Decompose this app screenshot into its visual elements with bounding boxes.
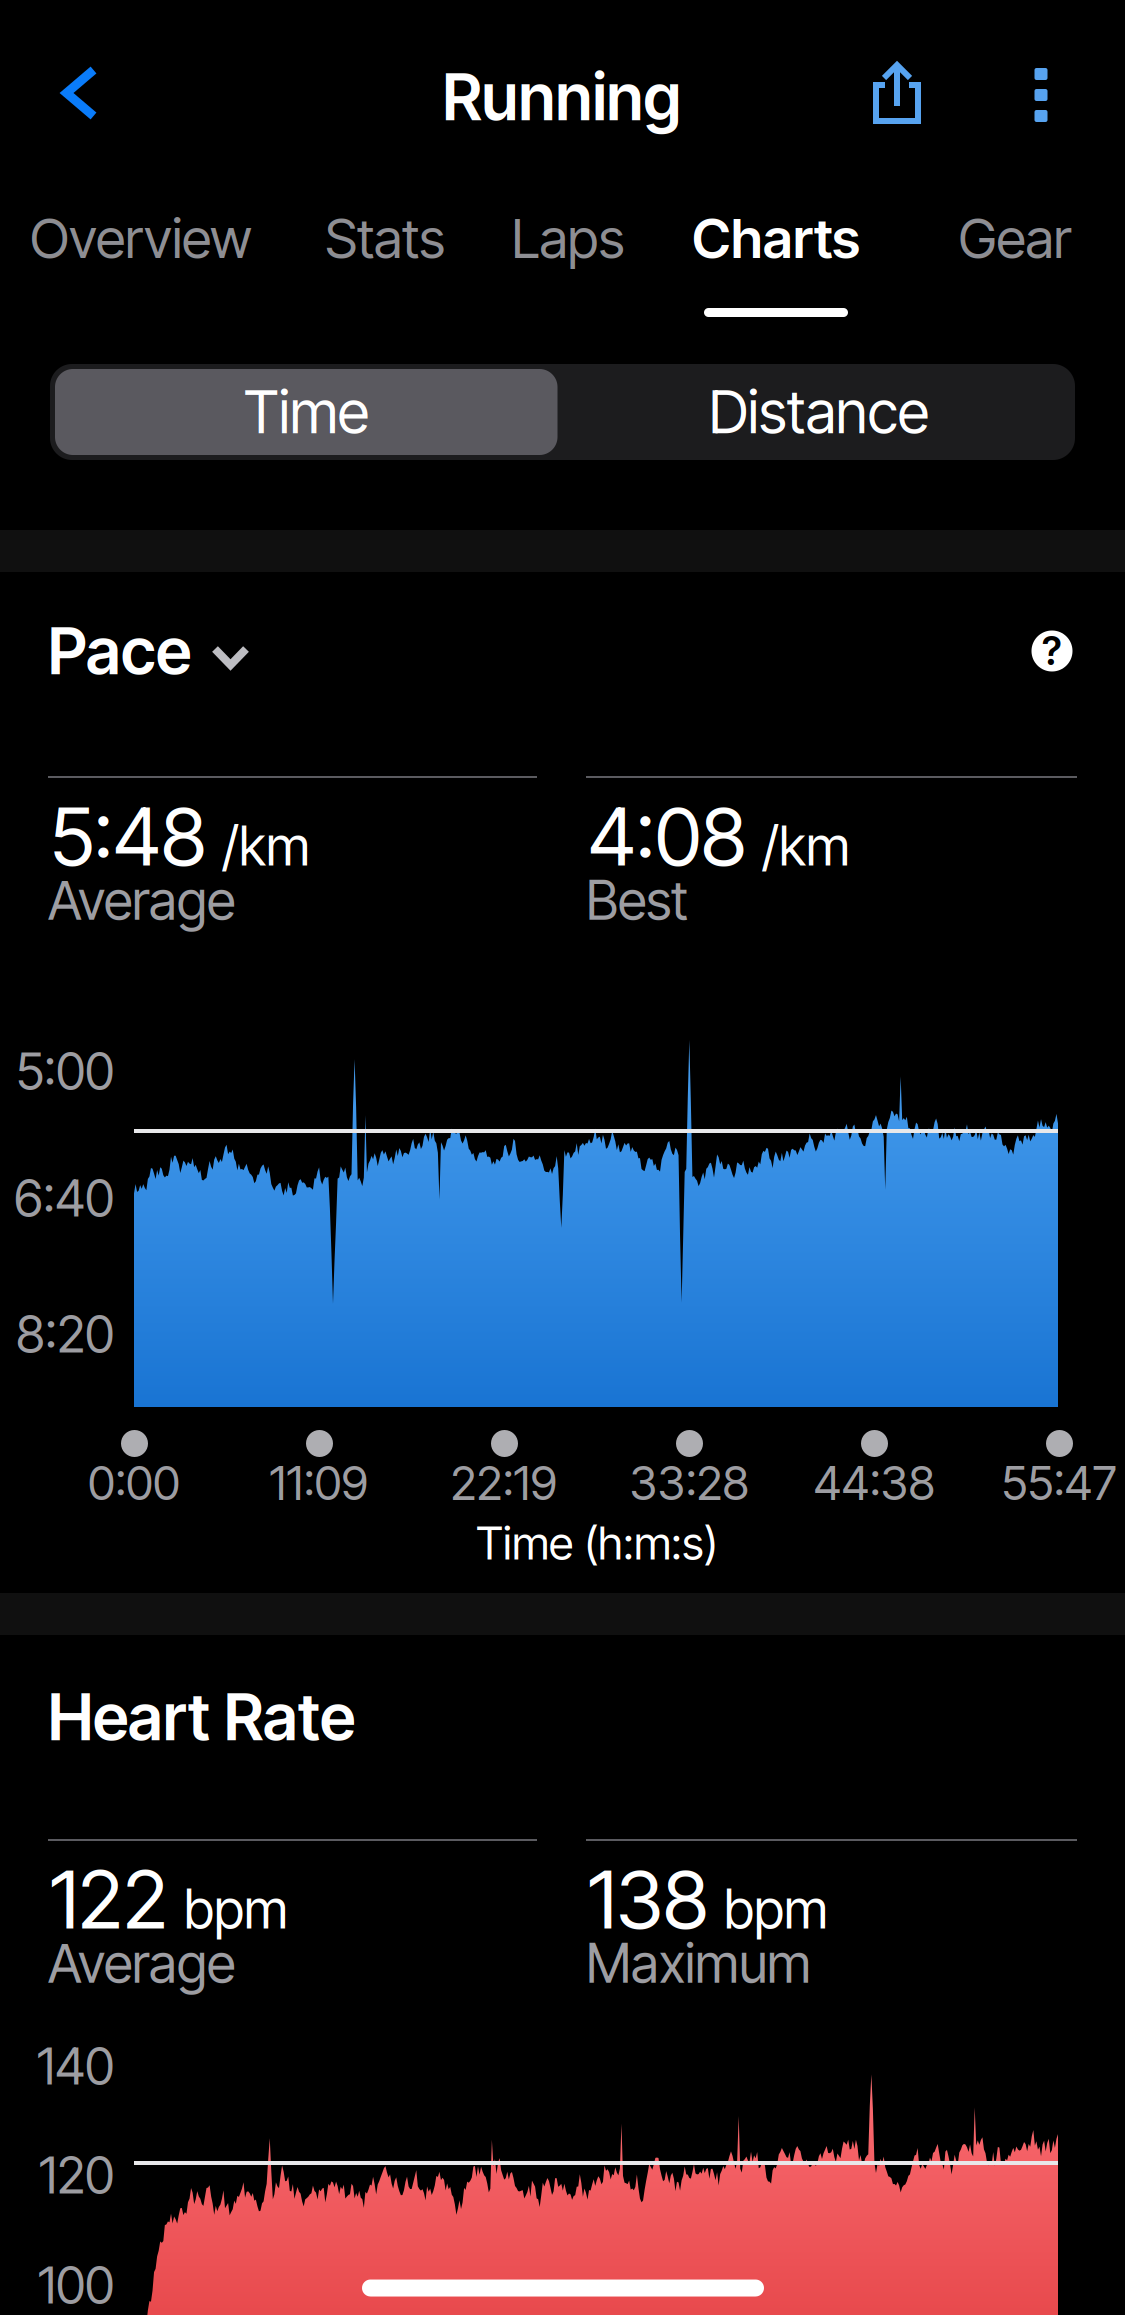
staticText: Gear (958, 205, 1071, 271)
staticText: 8:20 (16, 1303, 114, 1365)
staticText: Stats (325, 205, 445, 271)
staticText: Average (48, 868, 235, 932)
staticText: Maximum (586, 1931, 811, 1995)
staticText: Time (244, 376, 369, 447)
staticText: Running (442, 58, 681, 136)
staticText: ? (1042, 628, 1062, 674)
button[interactable]: Back (22, 30, 137, 156)
staticText: 4:08 (588, 788, 746, 885)
button[interactable]: Stats (325, 191, 445, 319)
staticText: 122 (50, 1851, 168, 1948)
staticText: 100 (38, 2254, 114, 2315)
staticText: Overview (30, 205, 252, 271)
staticText: bpm (724, 1877, 828, 1941)
staticText: 33:28 (629, 1455, 748, 1511)
button[interactable]: More options (992, 32, 1089, 158)
staticText: 120 (39, 2144, 114, 2206)
button[interactable]: Distance (562, 364, 1075, 460)
staticText: 5:48 (50, 788, 206, 885)
button[interactable]: Time (50, 364, 562, 460)
staticText: 55:47 (1001, 1455, 1116, 1511)
button[interactable]: Charts (692, 191, 860, 319)
staticText: Charts (692, 205, 860, 271)
staticText: 44:38 (813, 1455, 934, 1511)
staticText: 138 (588, 1851, 708, 1948)
staticText: /km (222, 814, 310, 878)
staticText: 22:19 (450, 1455, 557, 1511)
staticText: Average (48, 1931, 235, 1995)
staticText: 0:00 (88, 1455, 180, 1511)
staticText: bpm (184, 1877, 288, 1941)
staticText: 5:00 (16, 1040, 114, 1102)
staticText: 11:09 (269, 1455, 368, 1511)
button[interactable]: Laps (511, 191, 624, 319)
staticText: Best (586, 868, 688, 932)
button[interactable]: Help (1017, 616, 1086, 685)
staticText: 140 (37, 2035, 114, 2097)
button[interactable]: Gear (958, 191, 1071, 319)
staticText: Pace (48, 612, 191, 690)
button[interactable]: Overview (30, 191, 252, 319)
button[interactable]: Share (839, 37, 955, 149)
staticText: Heart Rate (48, 1678, 355, 1756)
staticText: Distance (709, 376, 929, 447)
staticText: Laps (511, 205, 624, 271)
staticText: /km (762, 814, 850, 878)
staticText: Time (h:m:s) (476, 1516, 718, 1570)
button[interactable]: Pace (48, 601, 262, 701)
staticText: 6:40 (14, 1167, 114, 1229)
